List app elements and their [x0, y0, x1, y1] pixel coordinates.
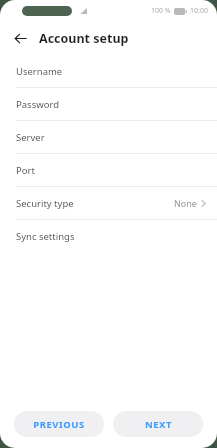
staticText: Sync settings — [16, 230, 75, 243]
button[interactable]: PREVIOUS — [14, 411, 104, 437]
button[interactable]: Security type — [0, 187, 217, 219]
staticText: Password — [16, 98, 59, 111]
staticText: 10:00 — [190, 6, 208, 16]
button[interactable]: Username — [0, 55, 217, 87]
staticText: 100 % — [151, 6, 171, 16]
staticText: None — [174, 197, 197, 209]
button[interactable]: Back — [9, 27, 31, 49]
staticText: Port — [16, 164, 35, 177]
staticText: Security type — [16, 197, 74, 210]
staticText: Username — [16, 65, 63, 78]
staticText: NEXT — [145, 418, 172, 431]
button[interactable]: Server — [0, 121, 217, 153]
button[interactable]: Password — [0, 88, 217, 120]
staticText: Account setup — [39, 30, 129, 47]
button[interactable]: Port — [0, 154, 217, 186]
staticText: Server — [16, 131, 45, 144]
button[interactable]: NEXT — [113, 411, 203, 437]
button[interactable]: Sync settings — [0, 220, 217, 252]
staticText: PREVIOUS — [33, 418, 85, 431]
